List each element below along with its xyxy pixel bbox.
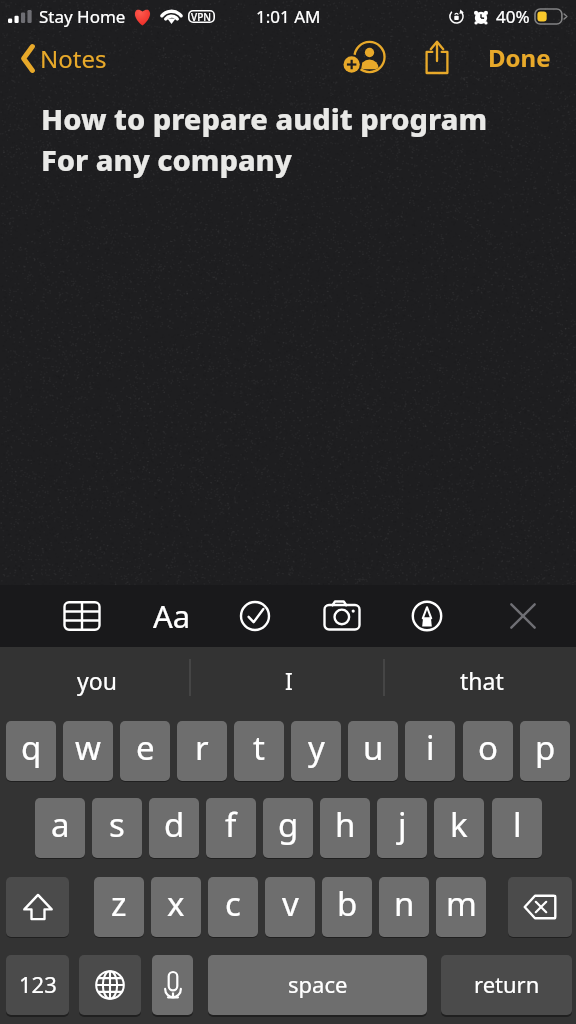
button[interactable]: Insert table bbox=[57, 591, 107, 641]
staticText: p bbox=[535, 725, 556, 770]
staticText: return bbox=[474, 969, 540, 999]
button[interactable]: g bbox=[263, 798, 313, 858]
staticText: x bbox=[167, 881, 185, 926]
button[interactable]: v bbox=[265, 877, 315, 937]
staticText: VPN bbox=[191, 10, 212, 23]
staticText: v bbox=[282, 881, 299, 926]
staticText: space bbox=[288, 969, 348, 999]
staticText: y bbox=[308, 725, 325, 770]
button[interactable]: Backspace bbox=[508, 877, 572, 937]
button[interactable]: w bbox=[63, 721, 113, 781]
button[interactable]: s bbox=[92, 798, 142, 858]
button[interactable]: z bbox=[94, 877, 144, 937]
button[interactable]: t bbox=[234, 721, 284, 781]
staticText: that bbox=[460, 665, 504, 696]
button[interactable]: d bbox=[149, 798, 199, 858]
staticText: u bbox=[363, 725, 384, 770]
button[interactable]: i bbox=[405, 721, 455, 781]
button[interactable]: Checklist bbox=[230, 591, 280, 641]
button[interactable]: f bbox=[206, 798, 256, 858]
button[interactable]: q bbox=[6, 721, 56, 781]
staticText: d bbox=[164, 802, 185, 847]
button[interactable]: r bbox=[177, 721, 227, 781]
button[interactable]: x bbox=[151, 877, 201, 937]
staticText: t bbox=[253, 725, 265, 770]
staticText: w bbox=[75, 725, 101, 770]
button[interactable]: Markup bbox=[402, 591, 452, 641]
staticText: 1:01 AM bbox=[256, 5, 321, 28]
staticText: f bbox=[225, 802, 237, 847]
button[interactable]: e bbox=[120, 721, 170, 781]
button[interactable]: b bbox=[322, 877, 372, 937]
staticText: z bbox=[111, 881, 127, 926]
button[interactable]: n bbox=[379, 877, 429, 937]
button[interactable]: Dictation bbox=[152, 955, 193, 1015]
staticText: 40% bbox=[496, 5, 530, 28]
button[interactable]: space bbox=[208, 955, 427, 1015]
staticText: Stay Home bbox=[39, 5, 126, 28]
button[interactable]: I bbox=[190, 647, 384, 710]
staticText: Done bbox=[488, 41, 551, 74]
staticText: Aa bbox=[153, 595, 191, 637]
button[interactable]: Shift bbox=[6, 877, 69, 937]
button[interactable]: c bbox=[208, 877, 258, 937]
button[interactable]: p bbox=[520, 721, 570, 781]
staticText: r bbox=[195, 725, 209, 770]
staticText: you bbox=[77, 665, 117, 696]
staticText: o bbox=[478, 725, 498, 770]
staticText: b bbox=[337, 881, 358, 926]
button[interactable]: o bbox=[463, 721, 513, 781]
button[interactable]: Notes bbox=[0, 35, 119, 79]
staticText: n bbox=[394, 881, 415, 926]
button[interactable]: l bbox=[492, 798, 542, 858]
staticText: a bbox=[51, 802, 70, 847]
button[interactable]: a bbox=[35, 798, 85, 858]
button[interactable]: k bbox=[434, 798, 484, 858]
button[interactable]: Share bbox=[414, 34, 460, 80]
staticText: c bbox=[225, 881, 241, 926]
button[interactable]: Next keyboard bbox=[79, 955, 141, 1015]
staticText: Notes bbox=[40, 42, 107, 75]
staticText: g bbox=[278, 802, 299, 847]
button[interactable]: return bbox=[441, 955, 572, 1015]
button[interactable]: Add people bbox=[341, 34, 387, 80]
button[interactable]: that bbox=[384, 647, 576, 710]
button[interactable]: h bbox=[320, 798, 370, 858]
staticText: l bbox=[513, 802, 522, 847]
button[interactable]: Done bbox=[474, 33, 576, 82]
staticText: q bbox=[21, 725, 42, 770]
button[interactable]: Close toolbar bbox=[498, 591, 548, 641]
button[interactable]: u bbox=[348, 721, 398, 781]
staticText: h bbox=[335, 802, 356, 847]
button[interactable]: Camera bbox=[317, 591, 367, 641]
button[interactable]: y bbox=[291, 721, 341, 781]
button[interactable]: m bbox=[436, 877, 486, 937]
staticText: s bbox=[109, 802, 125, 847]
button[interactable]: 123 bbox=[6, 955, 69, 1015]
staticText: i bbox=[426, 725, 435, 770]
staticText: j bbox=[398, 802, 407, 847]
button[interactable]: j bbox=[377, 798, 427, 858]
staticText: 123 bbox=[19, 969, 57, 999]
button[interactable]: you bbox=[0, 647, 190, 710]
staticText: k bbox=[450, 802, 468, 847]
staticText: How to prepare audit program For any com… bbox=[41, 99, 488, 180]
button[interactable]: Aa bbox=[147, 591, 197, 641]
staticText: I bbox=[285, 665, 293, 696]
staticText: m bbox=[446, 881, 477, 926]
staticText: e bbox=[136, 725, 155, 770]
